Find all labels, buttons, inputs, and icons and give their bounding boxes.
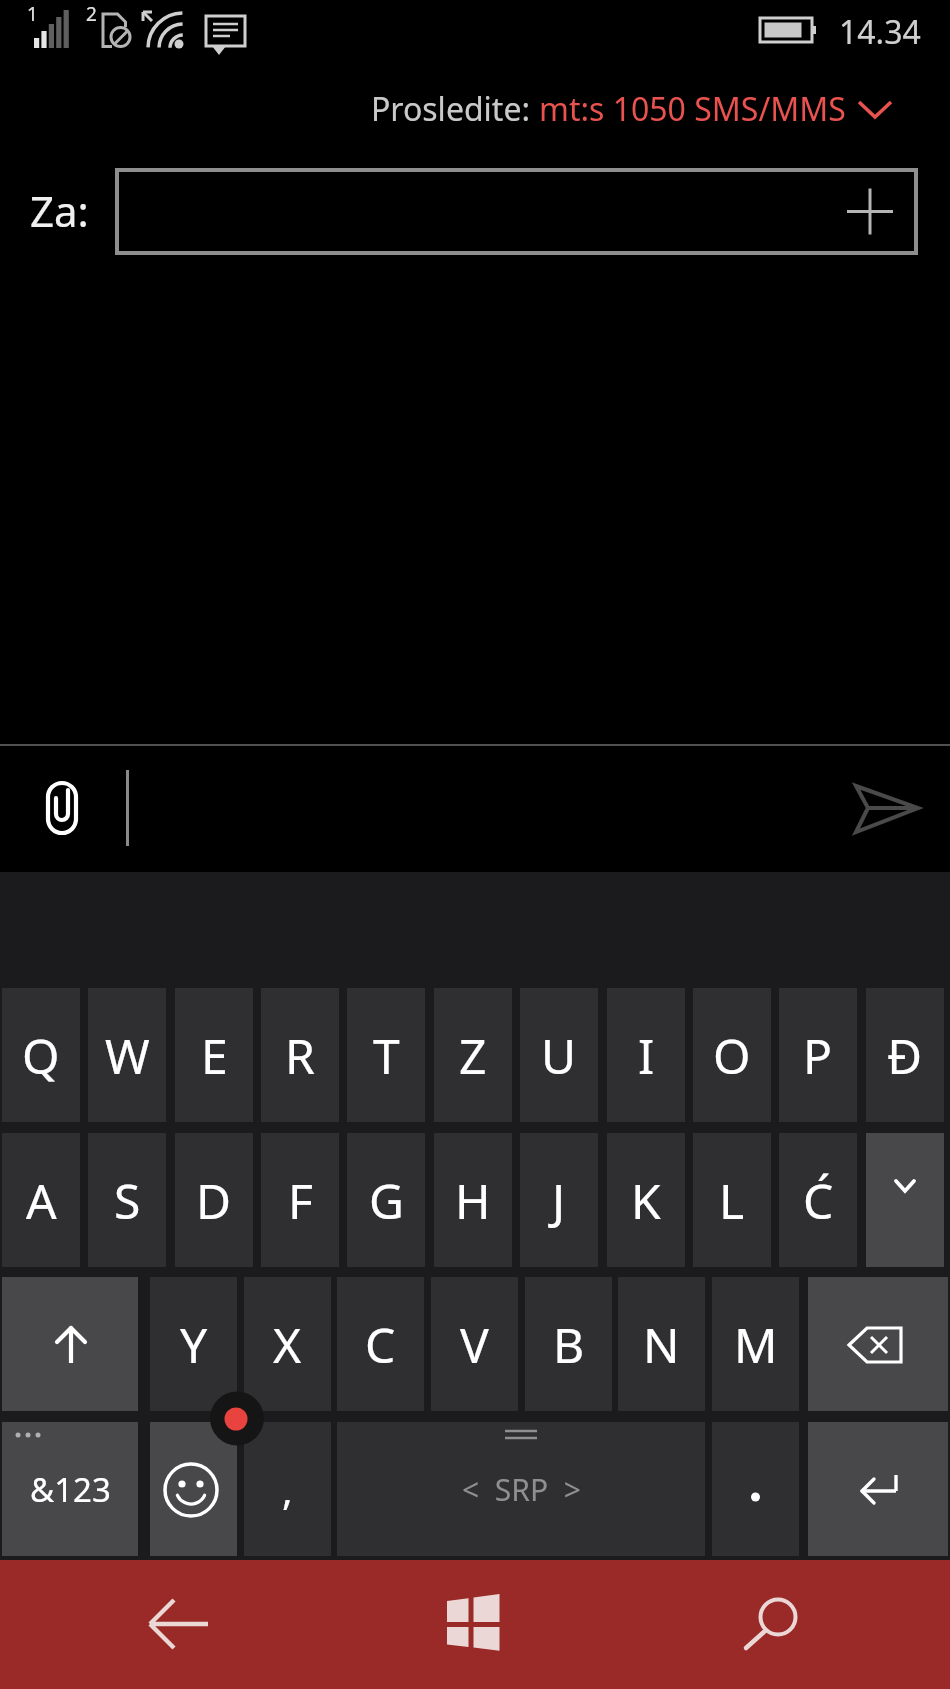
staticText: 1 <box>27 1 38 27</box>
staticText: < SRP > <box>462 1469 581 1510</box>
staticText: I <box>638 1023 655 1088</box>
staticText: N <box>643 1312 680 1377</box>
staticText: R <box>285 1023 315 1088</box>
button[interactable]: Ć <box>779 1133 857 1267</box>
button[interactable]: < SRP > <box>337 1422 705 1556</box>
staticText: Z <box>459 1023 487 1088</box>
button[interactable]: &123 <box>2 1422 138 1556</box>
staticText: B <box>553 1312 585 1377</box>
button[interactable]: P <box>779 988 857 1122</box>
button[interactable] <box>34 770 94 850</box>
staticText: A <box>26 1168 57 1233</box>
staticText: 2 <box>86 1 97 27</box>
button[interactable]: R <box>261 988 339 1122</box>
staticText: Q <box>22 1023 60 1088</box>
button[interactable]: F <box>261 1133 339 1267</box>
button[interactable]: E <box>175 988 253 1122</box>
button[interactable]: W <box>88 988 166 1122</box>
button[interactable]: A <box>2 1133 80 1267</box>
button[interactable]: Q <box>2 988 80 1122</box>
staticText: Prosledite: <box>371 87 539 131</box>
staticText: P <box>803 1023 833 1088</box>
staticText: Y <box>180 1312 208 1377</box>
button[interactable]: G <box>347 1133 425 1267</box>
staticText: E <box>201 1023 228 1088</box>
button[interactable]: V <box>431 1277 518 1411</box>
button[interactable]: L <box>693 1133 771 1267</box>
button[interactable]: M <box>712 1277 799 1411</box>
staticText: F <box>288 1168 313 1233</box>
button[interactable]: I <box>607 988 685 1122</box>
button[interactable]: U <box>520 988 598 1122</box>
button[interactable]: X <box>244 1277 331 1411</box>
button[interactable]: O <box>693 988 771 1122</box>
staticText: M <box>734 1312 778 1377</box>
staticText: O <box>713 1023 751 1088</box>
button[interactable]: J <box>520 1133 598 1267</box>
button[interactable]: S <box>88 1133 166 1267</box>
staticText: K <box>631 1168 661 1233</box>
button[interactable]: H <box>434 1133 512 1267</box>
button[interactable]: C <box>337 1277 424 1411</box>
staticText: W <box>105 1023 150 1088</box>
staticText: , <box>282 1462 293 1516</box>
staticText: T <box>373 1023 400 1088</box>
button[interactable] <box>844 774 930 844</box>
button[interactable] <box>2 1277 138 1411</box>
staticText: 14.34 <box>839 10 921 54</box>
button[interactable]: Z <box>434 988 512 1122</box>
button[interactable]: B <box>525 1277 612 1411</box>
staticText: G <box>369 1168 404 1233</box>
button[interactable]: D <box>175 1133 253 1267</box>
button[interactable]: Đ <box>866 988 944 1122</box>
button[interactable] <box>115 168 918 255</box>
button[interactable] <box>425 1586 525 1664</box>
staticText: Ć <box>803 1168 834 1233</box>
staticText: C <box>365 1312 396 1377</box>
button[interactable] <box>726 1586 826 1664</box>
staticText: Đ <box>887 1023 923 1088</box>
staticText: S <box>114 1168 141 1233</box>
staticText: &123 <box>30 1467 111 1512</box>
button[interactable] <box>150 1422 237 1556</box>
staticText: D <box>196 1168 232 1233</box>
button[interactable]: T <box>347 988 425 1122</box>
staticText: U <box>541 1023 577 1088</box>
staticText: J <box>552 1168 566 1233</box>
staticText: H <box>455 1168 491 1233</box>
button[interactable] <box>808 1277 948 1411</box>
button[interactable]: K <box>607 1133 685 1267</box>
button[interactable] <box>130 1586 230 1664</box>
staticText: V <box>460 1312 489 1377</box>
staticText: L <box>719 1168 745 1233</box>
staticText: mt:s 1050 SMS/MMS <box>539 87 846 131</box>
button[interactable] <box>808 1422 948 1556</box>
button[interactable]: , <box>244 1422 331 1556</box>
button[interactable]: Y <box>150 1277 237 1411</box>
button[interactable] <box>866 1133 944 1267</box>
button[interactable]: N <box>618 1277 705 1411</box>
staticText: X <box>273 1312 302 1377</box>
button[interactable] <box>712 1422 799 1556</box>
button[interactable]: mt:s 1050 SMS/MMS <box>539 87 892 131</box>
staticText: Za: <box>30 182 89 239</box>
